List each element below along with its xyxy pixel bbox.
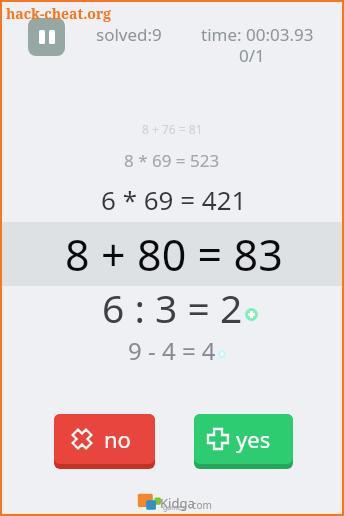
staticText: solved:9 <box>96 23 162 46</box>
staticText: 8 * 69 = 523 <box>124 149 220 172</box>
staticText: yes <box>236 424 271 454</box>
button[interactable]: yes <box>194 414 293 469</box>
staticText: 6 * 69 = 421 <box>101 182 247 217</box>
staticText: 9 - 4 = 4 <box>128 334 216 367</box>
staticText: 8 + 80 = 83 <box>65 225 283 284</box>
button[interactable]: no <box>54 414 155 469</box>
button[interactable]: Pause <box>28 18 65 56</box>
staticText: 8 + 76 = 81 <box>142 121 203 137</box>
staticText: 6 : 3 = 2 <box>102 281 243 334</box>
staticText: Kidga <box>160 494 195 512</box>
staticText: hack-cheat.org <box>6 4 112 23</box>
staticText: no <box>104 424 131 454</box>
staticText: .com <box>189 498 212 512</box>
staticText: time: 00:03.93 <box>201 23 314 46</box>
staticText: games <box>163 503 186 513</box>
staticText: 0/1 <box>239 44 265 67</box>
